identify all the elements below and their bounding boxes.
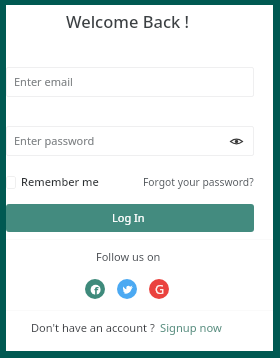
- staticText: Welcome Back !: [66, 10, 190, 32]
- button[interactable]: Signup now: [160, 320, 222, 335]
- staticText: Log In: [112, 210, 145, 225]
- staticText: Remember me: [21, 174, 99, 188]
- staticText: Don't have an account ?: [31, 320, 155, 335]
- button[interactable]: Remember me: [6, 175, 99, 189]
- button[interactable]: Show password: [228, 133, 244, 149]
- staticText: f: [94, 283, 99, 298]
- button[interactable]: Forgot your password?: [143, 175, 254, 189]
- staticText: Enter email: [14, 74, 73, 89]
- button[interactable]: Log In: [6, 204, 254, 232]
- staticText: Follow us on: [96, 249, 161, 264]
- button[interactable]: Twitter: [117, 279, 137, 299]
- button[interactable]: Facebook: [85, 279, 105, 299]
- staticText: G: [155, 281, 165, 298]
- button[interactable]: Google: [149, 279, 169, 299]
- button[interactable]: Enter password: [6, 126, 254, 156]
- button[interactable]: Enter email: [6, 67, 254, 97]
- staticText: Enter password: [14, 133, 95, 148]
